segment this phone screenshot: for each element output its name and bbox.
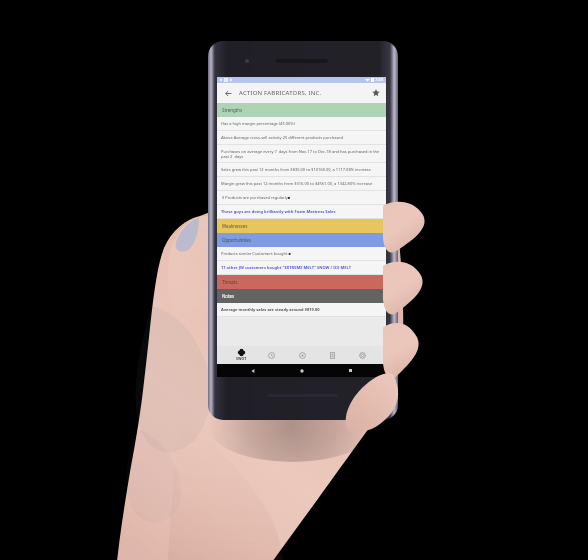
button[interactable]: Margin grew this past 12 months from $31… — [217, 177, 386, 190]
button[interactable]: Activity — [261, 346, 281, 364]
staticText: These guys are doing brilliantly with Fo… — [221, 209, 336, 214]
staticText: Above Average cross-sell activity 25 dif… — [221, 135, 344, 140]
button[interactable]: 17 other JW customers bought "EXTREME ME… — [217, 261, 386, 274]
button[interactable]: Favorite — [366, 84, 386, 102]
button[interactable]: Back — [217, 84, 239, 102]
staticText: Threats — [222, 279, 238, 285]
staticText: Notes — [222, 293, 235, 299]
staticText: ACTION FABRICATORS, INC. — [239, 89, 322, 97]
button[interactable]: Average monthly sales are steady around … — [217, 303, 386, 316]
button[interactable]: SWOT — [231, 346, 251, 364]
button[interactable]: Above Average cross-sell activity 25 dif… — [217, 131, 386, 144]
button[interactable]: 0 Products are purchased regularly▪ — [217, 191, 386, 204]
button[interactable]: Purchases on average every 7 days from N… — [217, 145, 386, 162]
staticText: Weaknesses — [222, 223, 248, 229]
button[interactable]: Sales grew this past 12 months from $835… — [217, 163, 386, 176]
button[interactable]: Insights — [292, 346, 312, 364]
staticText: Products similar Customers bought ▪ — [221, 251, 292, 256]
staticText: SWOT — [236, 356, 247, 361]
staticText: Opportunities — [222, 237, 251, 243]
button[interactable]: Settings — [352, 346, 372, 364]
button[interactable]: Contacts — [322, 346, 342, 364]
button[interactable]: Products similar Customers bought ▪ — [217, 247, 386, 260]
button[interactable]: Weaknesses — [217, 219, 386, 233]
button[interactable]: Has a high margin percentage (45.00%) — [217, 117, 386, 130]
staticText: Sales grew this past 12 months from $835… — [221, 167, 371, 172]
staticText: 7:33 — [375, 77, 384, 83]
button[interactable]: These guys are doing brilliantly with Fo… — [217, 205, 386, 218]
button[interactable]: Notes — [217, 289, 386, 303]
staticText: Strengths — [222, 107, 243, 113]
button[interactable]: Opportunities — [217, 233, 386, 247]
staticText: 17 other JW customers bought "EXTREME ME… — [221, 265, 352, 270]
staticText: Average monthly sales are steady around … — [221, 307, 320, 312]
staticText: Margin grew this past 12 months from $31… — [221, 181, 373, 186]
staticText: Has a high margin percentage (45.00%) — [221, 121, 295, 126]
button[interactable]: Strengths — [217, 103, 386, 117]
staticText: 0 Products are purchased regularly▪ — [221, 195, 291, 200]
button[interactable]: Threats — [217, 275, 386, 289]
staticText: Purchases on average every 7 days from N… — [221, 149, 382, 159]
